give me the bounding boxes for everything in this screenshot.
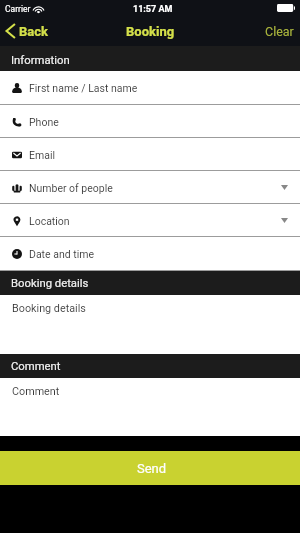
other: Open picker: [281, 185, 288, 190]
staticText: First name / Last name: [29, 82, 138, 94]
other: Wi-Fi: [34, 6, 43, 13]
staticText: Phone: [29, 116, 59, 128]
button[interactable]: Number of people: [0, 171, 300, 204]
button[interactable]: Back: [0, 20, 56, 42]
button[interactable]: Date and time: [0, 237, 300, 271]
staticText: Back: [19, 24, 48, 39]
staticText: Information: [11, 54, 70, 67]
other: Battery: [277, 4, 295, 12]
button[interactable]: Email: [0, 138, 300, 171]
staticText: Date and time: [29, 248, 95, 260]
button[interactable]: Comment: [0, 378, 300, 436]
button[interactable]: Location: [0, 204, 300, 237]
staticText: Email: [29, 149, 55, 161]
staticText: Comment: [12, 385, 60, 398]
staticText: Booking: [126, 24, 175, 39]
staticText: 11:57 AM: [133, 4, 173, 15]
other: Open picker: [281, 218, 288, 223]
staticText: Comment: [11, 360, 61, 373]
staticText: Booking details: [12, 302, 86, 315]
staticText: Location: [29, 215, 70, 227]
button[interactable]: Phone: [0, 105, 300, 138]
staticText: Carrier: [5, 4, 31, 14]
staticText: Booking details: [11, 277, 89, 290]
staticText: Number of people: [29, 182, 113, 194]
button[interactable]: Clear: [259, 19, 300, 44]
staticText: Clear: [265, 24, 294, 39]
button[interactable]: Send: [0, 451, 300, 485]
button[interactable]: Booking details: [0, 295, 300, 354]
staticText: Send: [137, 461, 167, 476]
button[interactable]: First name / Last name: [0, 71, 300, 105]
